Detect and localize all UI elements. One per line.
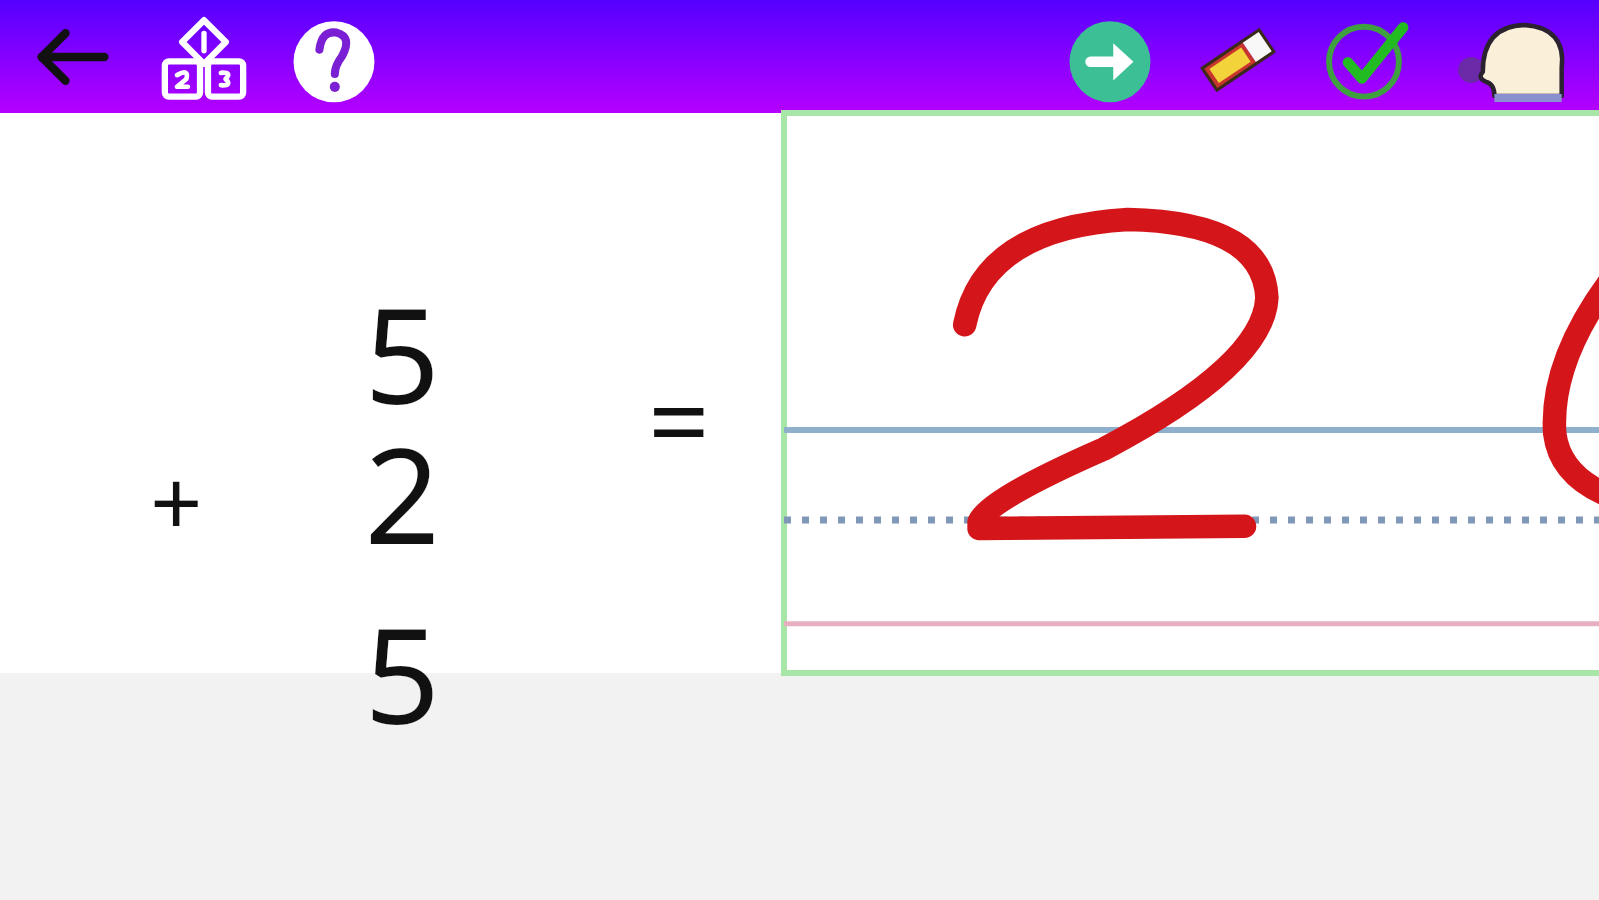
button[interactable]: Speak [1448,8,1564,108]
button[interactable]: Eraser [1186,16,1290,104]
button[interactable] [784,113,1599,673]
button[interactable]: Help [288,16,380,104]
staticText: = [648,345,710,492]
staticText: + [150,438,203,563]
button[interactable]: Check answer [1318,12,1418,104]
button[interactable]: Next [1064,16,1156,104]
staticText: 5 [300,263,440,443]
staticText: 25 [300,403,440,763]
button[interactable]: Back [36,21,108,93]
button[interactable]: Number blocks [160,16,248,100]
